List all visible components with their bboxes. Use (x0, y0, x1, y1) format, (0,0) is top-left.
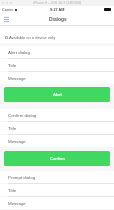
button[interactable]: Title (0, 59, 114, 71)
staticText: Dialogs (49, 17, 67, 22)
staticText: Title (8, 126, 17, 131)
button[interactable]: Confirm (4, 151, 110, 166)
staticText: iPhone 8 – iOS 10.3 (14E269) (33, 1, 81, 5)
staticText: Title (8, 188, 17, 193)
button[interactable]: Message (0, 135, 114, 147)
staticText: Message (8, 76, 26, 81)
staticText: Confirm dialog (8, 113, 37, 118)
staticText: Alert (53, 92, 62, 97)
staticText: Message (8, 139, 26, 144)
staticText: Prompt dialog (8, 175, 36, 180)
button[interactable]: Message (0, 197, 114, 209)
staticText: Alert dialog (8, 50, 30, 55)
button[interactable]: Alert dialog (0, 46, 114, 58)
button[interactable]: Prompt dialog (0, 171, 114, 183)
button[interactable]: Open navigation menu (0, 13, 12, 25)
staticText: Carrier (2, 8, 14, 12)
staticText: Message (8, 201, 26, 206)
button[interactable]: Alert (4, 87, 110, 102)
staticText: Confirm (50, 156, 65, 161)
button[interactable]: Message (0, 72, 114, 84)
staticText: Title (8, 63, 17, 68)
button[interactable]: Title (0, 122, 114, 134)
button[interactable]: Title (0, 184, 114, 196)
staticText: 9:27 AM (50, 8, 65, 12)
button[interactable]: Available on a device only (0, 26, 114, 43)
staticText: Available on a device only (9, 35, 56, 39)
button[interactable]: Confirm dialog (0, 109, 114, 121)
